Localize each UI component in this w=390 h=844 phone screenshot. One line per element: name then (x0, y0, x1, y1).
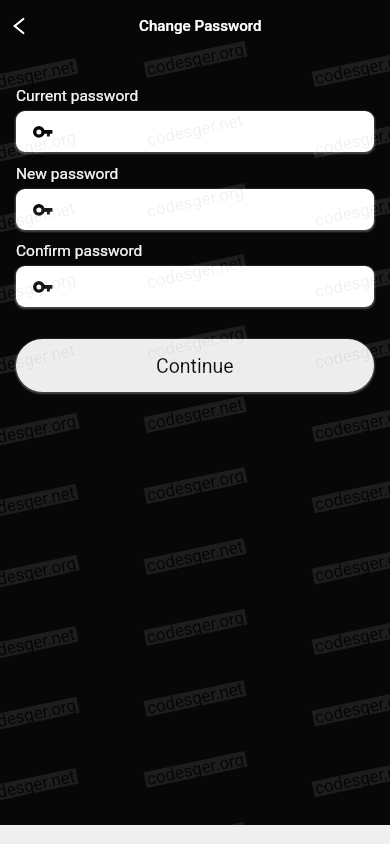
button[interactable]: New password (16, 189, 374, 230)
button[interactable]: Continue (16, 339, 374, 392)
staticText: Confirm password (16, 242, 143, 260)
button[interactable]: Current password (16, 111, 374, 152)
staticText: Change Password (139, 17, 262, 35)
staticText: Continue (156, 355, 234, 378)
staticText: New password (16, 165, 119, 183)
button[interactable]: Back (0, 6, 39, 46)
button[interactable]: Confirm password (16, 266, 374, 307)
staticText: Current password (16, 87, 139, 105)
